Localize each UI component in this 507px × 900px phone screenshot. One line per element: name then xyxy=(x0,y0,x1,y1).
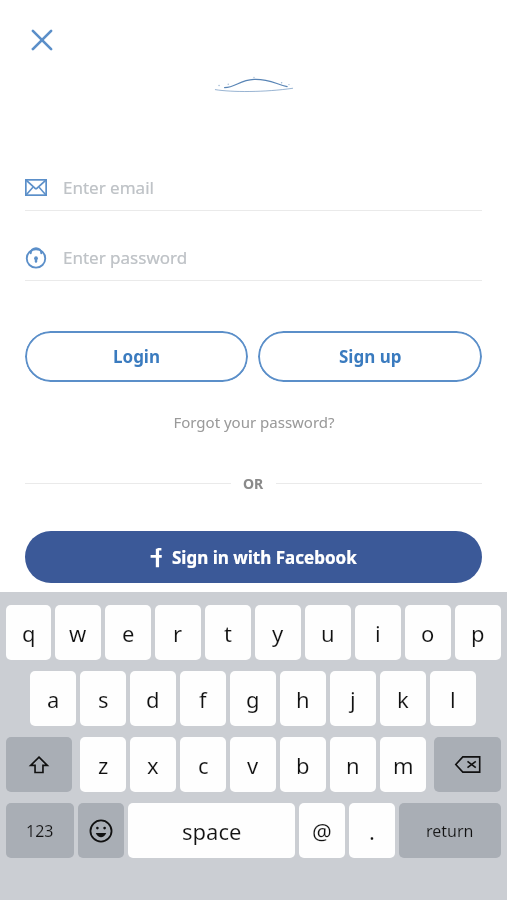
button[interactable]: Close xyxy=(22,20,62,60)
staticText: . xyxy=(369,816,375,846)
button[interactable]: v xyxy=(230,737,276,792)
staticText: y xyxy=(272,618,284,648)
staticText: v xyxy=(247,750,259,780)
staticText: Enter password xyxy=(63,246,188,269)
button[interactable]: e xyxy=(105,605,151,660)
button[interactable]: Sign up xyxy=(258,331,482,382)
button[interactable]: Shift xyxy=(6,737,72,792)
button[interactable]: Backspace xyxy=(434,737,501,792)
staticText: @ xyxy=(312,816,332,846)
staticText: j xyxy=(350,684,356,714)
button[interactable]: t xyxy=(205,605,251,660)
staticText: Sign up xyxy=(339,345,402,368)
staticText: k xyxy=(397,684,409,714)
button[interactable]: space xyxy=(128,803,295,858)
staticText: n xyxy=(346,750,360,780)
staticText: Enter email xyxy=(63,176,154,199)
button[interactable]: g xyxy=(230,671,276,726)
button[interactable]: return xyxy=(399,803,501,858)
button[interactable]: Forgot your password? xyxy=(0,412,507,432)
staticText: s xyxy=(98,684,109,714)
staticText: r xyxy=(173,618,183,648)
button[interactable]: h xyxy=(280,671,326,726)
button[interactable]: . xyxy=(349,803,395,858)
staticText: o xyxy=(421,618,435,648)
staticText: w xyxy=(69,618,87,648)
button[interactable]: a xyxy=(30,671,76,726)
staticText: g xyxy=(246,684,260,714)
button[interactable]: i xyxy=(355,605,401,660)
button[interactable]: s xyxy=(80,671,126,726)
button[interactable]: y xyxy=(255,605,301,660)
button[interactable]: Enter email xyxy=(0,164,507,211)
button[interactable]: m xyxy=(380,737,426,792)
button[interactable]: d xyxy=(130,671,176,726)
staticText: t xyxy=(224,618,232,648)
staticText: f xyxy=(199,684,207,714)
button[interactable]: f xyxy=(180,671,226,726)
staticText: a xyxy=(47,684,60,714)
button[interactable]: p xyxy=(455,605,501,660)
staticText: OR xyxy=(243,474,264,493)
staticText: 123 xyxy=(26,820,54,842)
staticText: u xyxy=(321,618,335,648)
staticText: Forgot your password? xyxy=(173,412,335,432)
button[interactable]: Enter password xyxy=(0,234,507,281)
staticText: h xyxy=(296,684,310,714)
staticText: i xyxy=(375,618,381,648)
staticText: x xyxy=(147,750,159,780)
staticText: p xyxy=(471,618,485,648)
staticText: Login xyxy=(113,345,161,368)
button[interactable]: j xyxy=(330,671,376,726)
button[interactable]: x xyxy=(130,737,176,792)
button[interactable]: k xyxy=(380,671,426,726)
button[interactable]: q xyxy=(6,605,51,660)
button[interactable]: @ xyxy=(299,803,345,858)
staticText: return xyxy=(426,820,474,842)
staticText: space xyxy=(182,816,242,846)
staticText: b xyxy=(296,750,310,780)
staticText: m xyxy=(393,750,414,780)
staticText: l xyxy=(450,684,456,714)
button[interactable]: Login xyxy=(25,331,248,382)
staticText: Sign in with Facebook xyxy=(172,546,357,569)
staticText: z xyxy=(98,750,109,780)
button[interactable]: l xyxy=(430,671,476,726)
button[interactable]: n xyxy=(330,737,376,792)
staticText: e xyxy=(122,618,135,648)
button[interactable]: r xyxy=(155,605,201,660)
button[interactable]: o xyxy=(405,605,451,660)
button[interactable]: w xyxy=(55,605,101,660)
staticText: d xyxy=(146,684,160,714)
button[interactable]: Emoji xyxy=(78,803,124,858)
button[interactable]: c xyxy=(180,737,226,792)
staticText: c xyxy=(198,750,209,780)
staticText: q xyxy=(22,618,36,648)
button[interactable]: z xyxy=(80,737,126,792)
button[interactable]: Sign in with Facebook xyxy=(25,531,482,583)
button[interactable]: 123 xyxy=(6,803,74,858)
button[interactable]: u xyxy=(305,605,351,660)
button[interactable]: b xyxy=(280,737,326,792)
